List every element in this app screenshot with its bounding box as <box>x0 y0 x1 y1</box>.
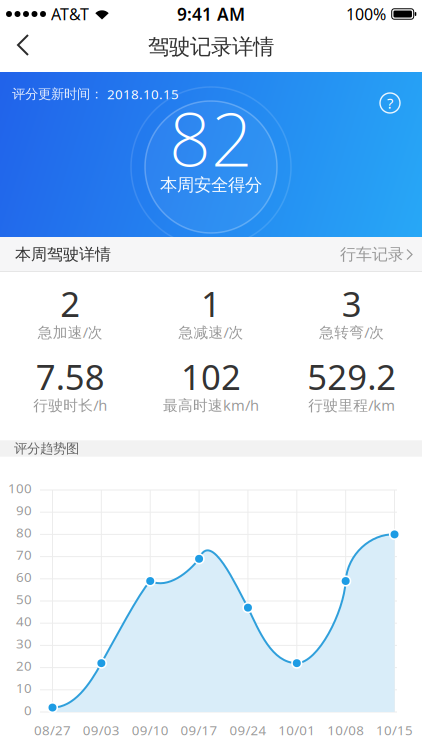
staticText: 30 <box>16 634 32 652</box>
staticText: 100% <box>346 3 386 25</box>
staticText: 最高时速km/h <box>163 395 259 415</box>
staticText: 行驶里程/km <box>308 395 395 415</box>
staticText: 7.58 <box>36 353 105 399</box>
staticText: 行车记录 <box>340 245 404 264</box>
staticText: AT&T <box>51 3 89 25</box>
staticText: 10 <box>16 679 32 697</box>
staticText: 50 <box>16 590 32 608</box>
staticText: 急减速/次 <box>178 322 243 342</box>
button[interactable]: 行车记录 <box>340 245 414 264</box>
staticText: 09/17 <box>181 721 218 739</box>
staticText: 10/01 <box>278 721 315 739</box>
staticText: 09/24 <box>229 721 266 739</box>
staticText: 529.2 <box>307 353 396 399</box>
staticText: 3 <box>342 280 362 326</box>
staticText: 评分更新时间： <box>12 86 107 102</box>
staticText: 急转弯/次 <box>319 322 384 342</box>
staticText: 08/27 <box>34 721 71 739</box>
staticText: 20 <box>16 657 32 674</box>
button[interactable]: Back <box>11 28 45 62</box>
staticText: 80 <box>16 523 32 541</box>
staticText: 急加速/次 <box>38 322 103 342</box>
staticText: 9:41 AM <box>177 2 245 25</box>
staticText: 09/10 <box>132 721 169 739</box>
staticText: 09/03 <box>83 721 120 739</box>
staticText: 10/08 <box>327 721 364 739</box>
staticText: 102 <box>181 353 241 399</box>
staticText: 70 <box>16 546 32 563</box>
staticText: 82 <box>169 89 253 187</box>
staticText: 1 <box>201 280 221 326</box>
staticText: 100 <box>8 479 32 497</box>
staticText: 2018.10.15 <box>107 85 179 103</box>
staticText: 90 <box>16 501 32 519</box>
staticText: 10/15 <box>376 721 413 739</box>
button[interactable]: Help <box>376 89 404 117</box>
staticText: 行驶时长/h <box>33 395 107 415</box>
staticText: 本周安全得分 <box>160 174 262 196</box>
staticText: 0 <box>24 701 32 719</box>
staticText: ? <box>387 93 393 113</box>
staticText: 2 <box>60 280 80 326</box>
staticText: 评分趋势图 <box>14 440 79 457</box>
staticText: 40 <box>16 612 32 630</box>
staticText: 驾驶记录详情 <box>148 34 274 60</box>
staticText: 60 <box>16 568 32 586</box>
staticText: 本周驾驶详情 <box>15 245 111 264</box>
